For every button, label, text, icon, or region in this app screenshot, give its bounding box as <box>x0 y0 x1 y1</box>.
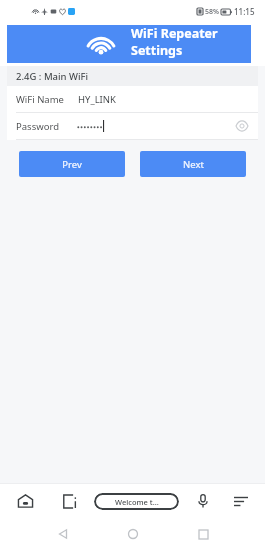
button[interactable]: Next <box>140 151 246 177</box>
staticText: WiFi Repeater Settings <box>131 25 251 59</box>
staticText: Next <box>183 158 204 171</box>
button[interactable]: Recent apps <box>181 518 225 550</box>
staticText: Prev <box>62 158 82 171</box>
button[interactable]: Password <box>7 113 258 140</box>
button[interactable]: Home <box>111 518 155 550</box>
button[interactable]: WiFi Name <box>7 86 258 113</box>
button[interactable]: Voice search <box>191 489 215 513</box>
staticText: 11:15 <box>234 6 255 17</box>
button[interactable]: Home <box>12 488 38 514</box>
button[interactable]: Welcome t… <box>94 493 179 510</box>
button[interactable]: Tabs <box>56 488 82 514</box>
staticText: Password <box>16 120 59 133</box>
staticText: HY_LINK <box>78 93 116 106</box>
staticText: WiFi Name <box>16 93 64 106</box>
button[interactable]: Show password <box>235 119 249 133</box>
staticText: Welcome t… <box>115 497 159 507</box>
staticText: 58% <box>205 7 219 17</box>
staticText: 2.4G : Main WiFi <box>16 70 89 83</box>
button[interactable]: Prev <box>19 151 125 177</box>
button[interactable]: Back <box>41 518 85 550</box>
button[interactable]: Menu <box>229 489 253 513</box>
